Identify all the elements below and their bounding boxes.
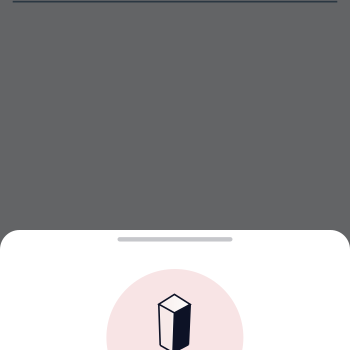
button[interactable]: Dismiss	[0, 0, 350, 230]
